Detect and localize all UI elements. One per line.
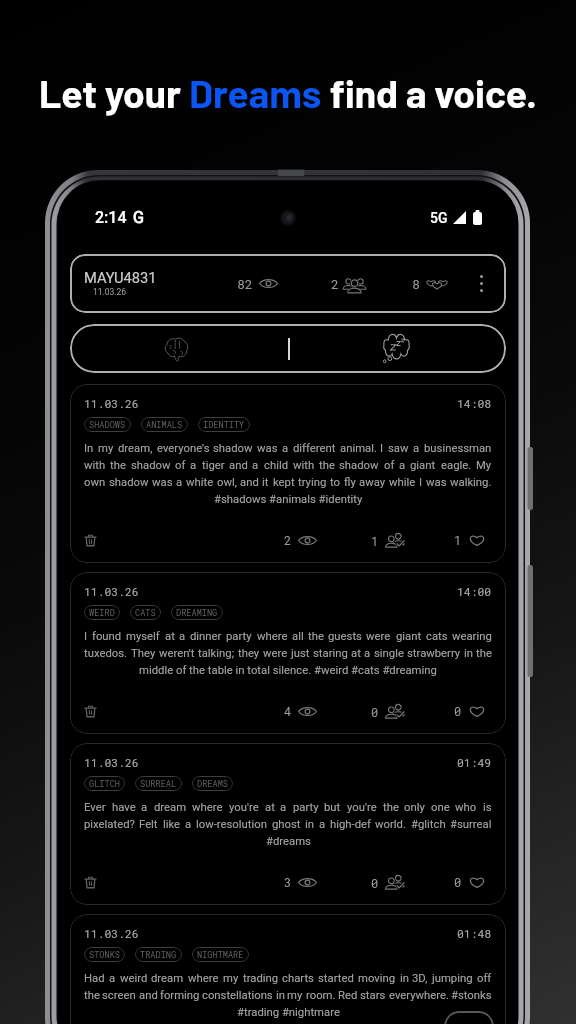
staticText: party xyxy=(226,630,252,643)
staticText: 0 xyxy=(454,874,462,890)
staticText: my xyxy=(223,972,239,985)
button[interactable]: Delete dream xyxy=(83,875,98,890)
staticText: you're xyxy=(229,801,259,814)
button[interactable]: ANIMALS xyxy=(141,417,188,432)
staticText: shadow xyxy=(213,442,253,455)
staticText: child xyxy=(264,459,289,472)
staticText: and xyxy=(139,989,158,1002)
staticText: #dreams xyxy=(266,835,311,848)
staticText: a xyxy=(179,630,186,643)
staticText: owl, xyxy=(217,476,237,489)
button[interactable]: 11.03.26 xyxy=(70,384,506,563)
staticText: dream, xyxy=(118,442,153,455)
staticText: constellations xyxy=(202,989,273,1002)
staticText: 5G xyxy=(430,210,448,226)
button[interactable]: DREAMS xyxy=(192,776,233,791)
button[interactable]: NIGHTMARE xyxy=(192,947,249,962)
staticText: forming xyxy=(160,989,200,1002)
staticText: 11.03.26 xyxy=(84,926,139,941)
button[interactable]: 11.03.26 xyxy=(70,914,506,1024)
staticText: STONKS xyxy=(89,949,120,960)
button[interactable]: More options xyxy=(474,271,489,296)
button[interactable]: Dream mode xyxy=(377,330,415,368)
staticText: away xyxy=(359,476,386,489)
staticText: IDENTITY xyxy=(203,419,245,430)
staticText: In xyxy=(84,442,94,455)
button[interactable]: SURREAL xyxy=(135,776,182,791)
button[interactable]: SHADOWS xyxy=(84,417,131,432)
staticText: off xyxy=(477,972,492,985)
staticText: ghost xyxy=(272,818,301,831)
staticText: low-resolution xyxy=(196,818,267,831)
staticText: a xyxy=(176,476,183,489)
staticText: while xyxy=(389,476,416,489)
staticText: the xyxy=(383,801,399,814)
staticText: but xyxy=(324,801,341,814)
staticText: the xyxy=(84,989,100,1002)
button[interactable]: 11.03.26 xyxy=(70,743,506,905)
button[interactable]: DREAMING xyxy=(171,605,223,620)
staticText: a xyxy=(399,459,406,472)
staticText: Ever xyxy=(84,801,106,814)
staticText: a xyxy=(141,801,148,814)
staticText: WEIRD xyxy=(89,607,115,618)
staticText: screen xyxy=(102,989,136,1002)
staticText: where xyxy=(188,972,219,985)
staticText: my xyxy=(98,442,114,455)
staticText: 01:48 xyxy=(457,926,492,941)
staticText: 0 xyxy=(371,704,379,720)
staticText: my xyxy=(287,989,303,1002)
button[interactable]: CATS xyxy=(130,605,161,620)
staticText: eagle. xyxy=(441,459,472,472)
staticText: find a voice. xyxy=(322,69,537,116)
staticText: SURREAL xyxy=(140,778,177,789)
button[interactable]: Brain mode xyxy=(160,333,192,365)
staticText: giant xyxy=(396,630,422,643)
staticText: just xyxy=(291,647,310,660)
staticText: 11.03.26 xyxy=(84,396,139,411)
staticText: 8 xyxy=(412,275,420,292)
staticText: G xyxy=(133,208,144,227)
staticText: you're xyxy=(347,801,377,814)
button[interactable]: TRADING xyxy=(135,947,182,962)
staticText: wearing xyxy=(452,630,492,643)
staticText: GLITCH xyxy=(89,778,120,789)
staticText: the xyxy=(319,459,335,472)
button[interactable]: 11.03.26 xyxy=(70,572,506,734)
staticText: staring xyxy=(313,647,348,660)
staticText: 3 xyxy=(284,874,292,890)
staticText: a xyxy=(280,801,287,814)
button[interactable]: New dream xyxy=(444,1011,494,1024)
button[interactable]: IDENTITY xyxy=(198,417,250,432)
staticText: was xyxy=(152,476,173,489)
button[interactable]: GLITCH xyxy=(84,776,125,791)
staticText: it xyxy=(262,476,269,489)
button[interactable]: STONKS xyxy=(84,947,125,962)
staticText: giant xyxy=(410,459,436,472)
staticText: #trading #nightmare xyxy=(237,1006,340,1019)
staticText: of xyxy=(384,459,395,472)
button[interactable]: Brain mode xyxy=(70,324,506,373)
button[interactable]: Delete dream xyxy=(83,533,98,548)
staticText: MAYU4831 xyxy=(84,269,157,286)
button[interactable]: MAYU4831 xyxy=(70,254,506,313)
staticText: talking; xyxy=(198,647,235,660)
staticText: tiger xyxy=(202,459,225,472)
staticText: everyone's xyxy=(157,442,210,455)
staticText: like xyxy=(163,818,181,831)
staticText: TRADING xyxy=(140,949,177,960)
staticText: businessman xyxy=(424,442,492,455)
staticText: walking. xyxy=(450,476,492,489)
staticText: I xyxy=(84,630,88,643)
staticText: of xyxy=(175,459,186,472)
staticText: single xyxy=(374,647,404,660)
staticText: have xyxy=(112,801,136,814)
staticText: in xyxy=(305,818,314,831)
staticText: is xyxy=(483,801,492,814)
button[interactable]: Delete dream xyxy=(83,704,98,719)
staticText: 11.03.26 xyxy=(84,584,139,599)
staticText: the xyxy=(308,630,324,643)
staticText: dinner xyxy=(190,630,222,643)
staticText: ANIMALS xyxy=(146,419,183,430)
button[interactable]: WEIRD xyxy=(84,605,120,620)
